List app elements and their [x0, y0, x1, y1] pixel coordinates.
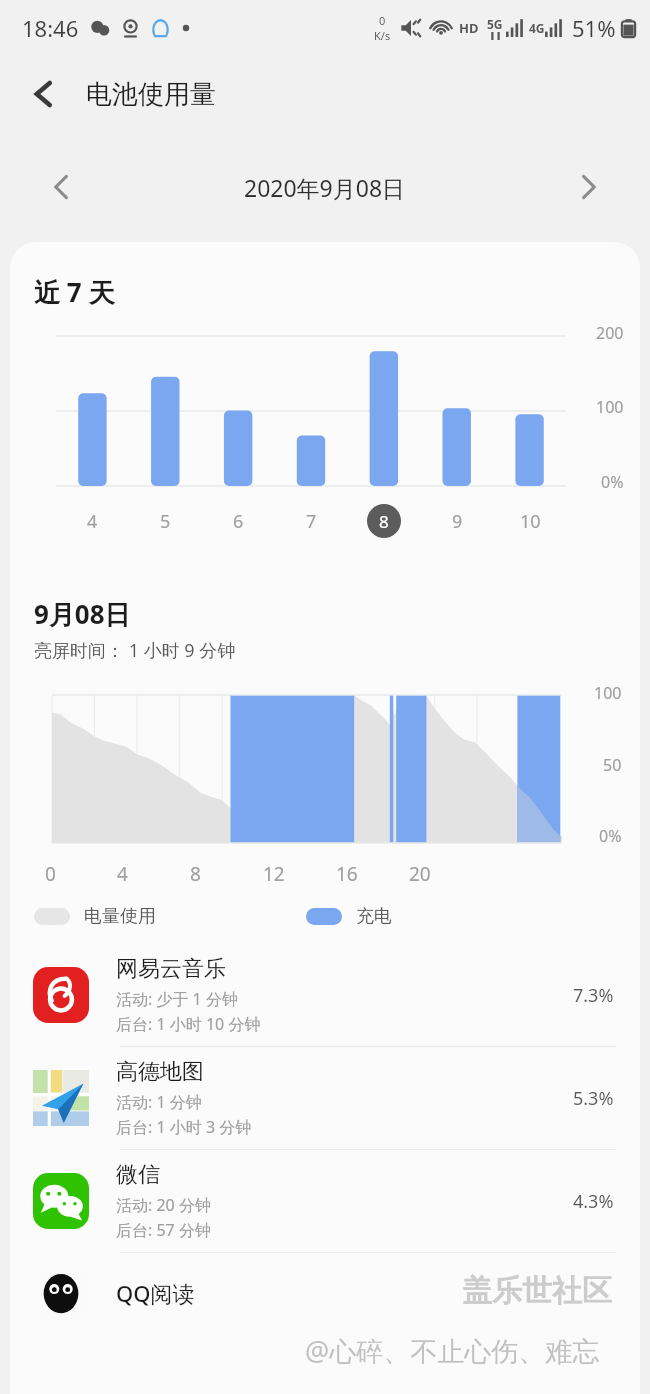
staticText: 0% — [599, 825, 622, 847]
staticText: 200 — [596, 322, 624, 344]
staticText: 5 — [160, 509, 171, 534]
staticText: 16 — [336, 861, 358, 887]
staticText: 50 — [603, 754, 622, 776]
button[interactable]: 微信 — [10, 1150, 640, 1252]
button[interactable]: 5 — [148, 504, 182, 538]
button[interactable]: 6 — [221, 504, 255, 538]
button[interactable]: QQ阅读 — [10, 1253, 640, 1333]
staticText: K/s — [374, 28, 391, 43]
staticText: 充电 — [356, 905, 392, 928]
button[interactable]: Back — [20, 70, 68, 118]
button[interactable]: Next day — [566, 165, 610, 209]
button[interactable]: 高德地图 — [10, 1047, 640, 1149]
button[interactable]: 9 — [440, 504, 474, 538]
staticText: 9月08日 — [34, 596, 131, 632]
staticText: 活动: 20 分钟 — [116, 1194, 211, 1216]
staticText: 100 — [596, 396, 624, 418]
button[interactable]: 10 — [513, 504, 547, 538]
staticText: 4G — [529, 20, 545, 36]
staticText: 活动: 1 分钟 — [116, 1091, 202, 1113]
staticText: 9 — [452, 509, 463, 534]
staticText: 20 — [409, 861, 431, 887]
staticText: 0 — [379, 13, 386, 28]
staticText: 后台: 1 小时 10 分钟 — [116, 1013, 261, 1035]
staticText: 电量使用 — [84, 905, 156, 928]
staticText: 亮屏时间： 1 小时 9 分钟 — [34, 638, 236, 663]
staticText: 10 — [520, 509, 541, 534]
staticText: 4.3% — [573, 1189, 614, 1214]
staticText: 18:46 — [22, 13, 79, 43]
staticText: 7.3% — [573, 983, 614, 1008]
staticText: 近 7 天 — [34, 274, 115, 310]
staticText: 4 — [87, 509, 98, 534]
staticText: QQ阅读 — [116, 1278, 195, 1308]
staticText: 12 — [263, 861, 285, 887]
button[interactable]: 4 — [75, 504, 109, 538]
staticText: 8 — [190, 861, 201, 887]
staticText: 高德地图 — [116, 1058, 204, 1086]
staticText: 盖乐世社区 — [462, 1272, 612, 1310]
button[interactable]: 7 — [294, 504, 328, 538]
staticText: 6 — [233, 509, 244, 534]
staticText: 0 — [45, 861, 56, 887]
staticText: HD — [459, 19, 479, 37]
staticText: 0% — [601, 471, 624, 493]
staticText: 网易云音乐 — [116, 955, 226, 983]
button[interactable]: Previous day — [40, 165, 84, 209]
staticText: 活动: 少于 1 分钟 — [116, 988, 238, 1010]
staticText: 后台: 57 分钟 — [116, 1219, 211, 1241]
staticText: 2020年9月08日 — [244, 172, 406, 203]
staticText: @心碎、不止心伤、难忘 — [305, 1332, 600, 1369]
button[interactable]: 8 — [367, 504, 401, 538]
staticText: 51% — [572, 13, 616, 43]
staticText: 微信 — [116, 1161, 160, 1189]
staticText: 电池使用量 — [86, 78, 216, 111]
staticText: 8 — [379, 510, 389, 533]
staticText: 100 — [594, 682, 622, 704]
staticText: 7 — [306, 509, 317, 534]
staticText: 5G — [487, 16, 503, 32]
staticText: 4 — [117, 861, 128, 887]
button[interactable]: 网易云音乐 — [10, 944, 640, 1046]
staticText: 5.3% — [573, 1086, 614, 1111]
staticText: 后台: 1 小时 3 分钟 — [116, 1116, 252, 1138]
